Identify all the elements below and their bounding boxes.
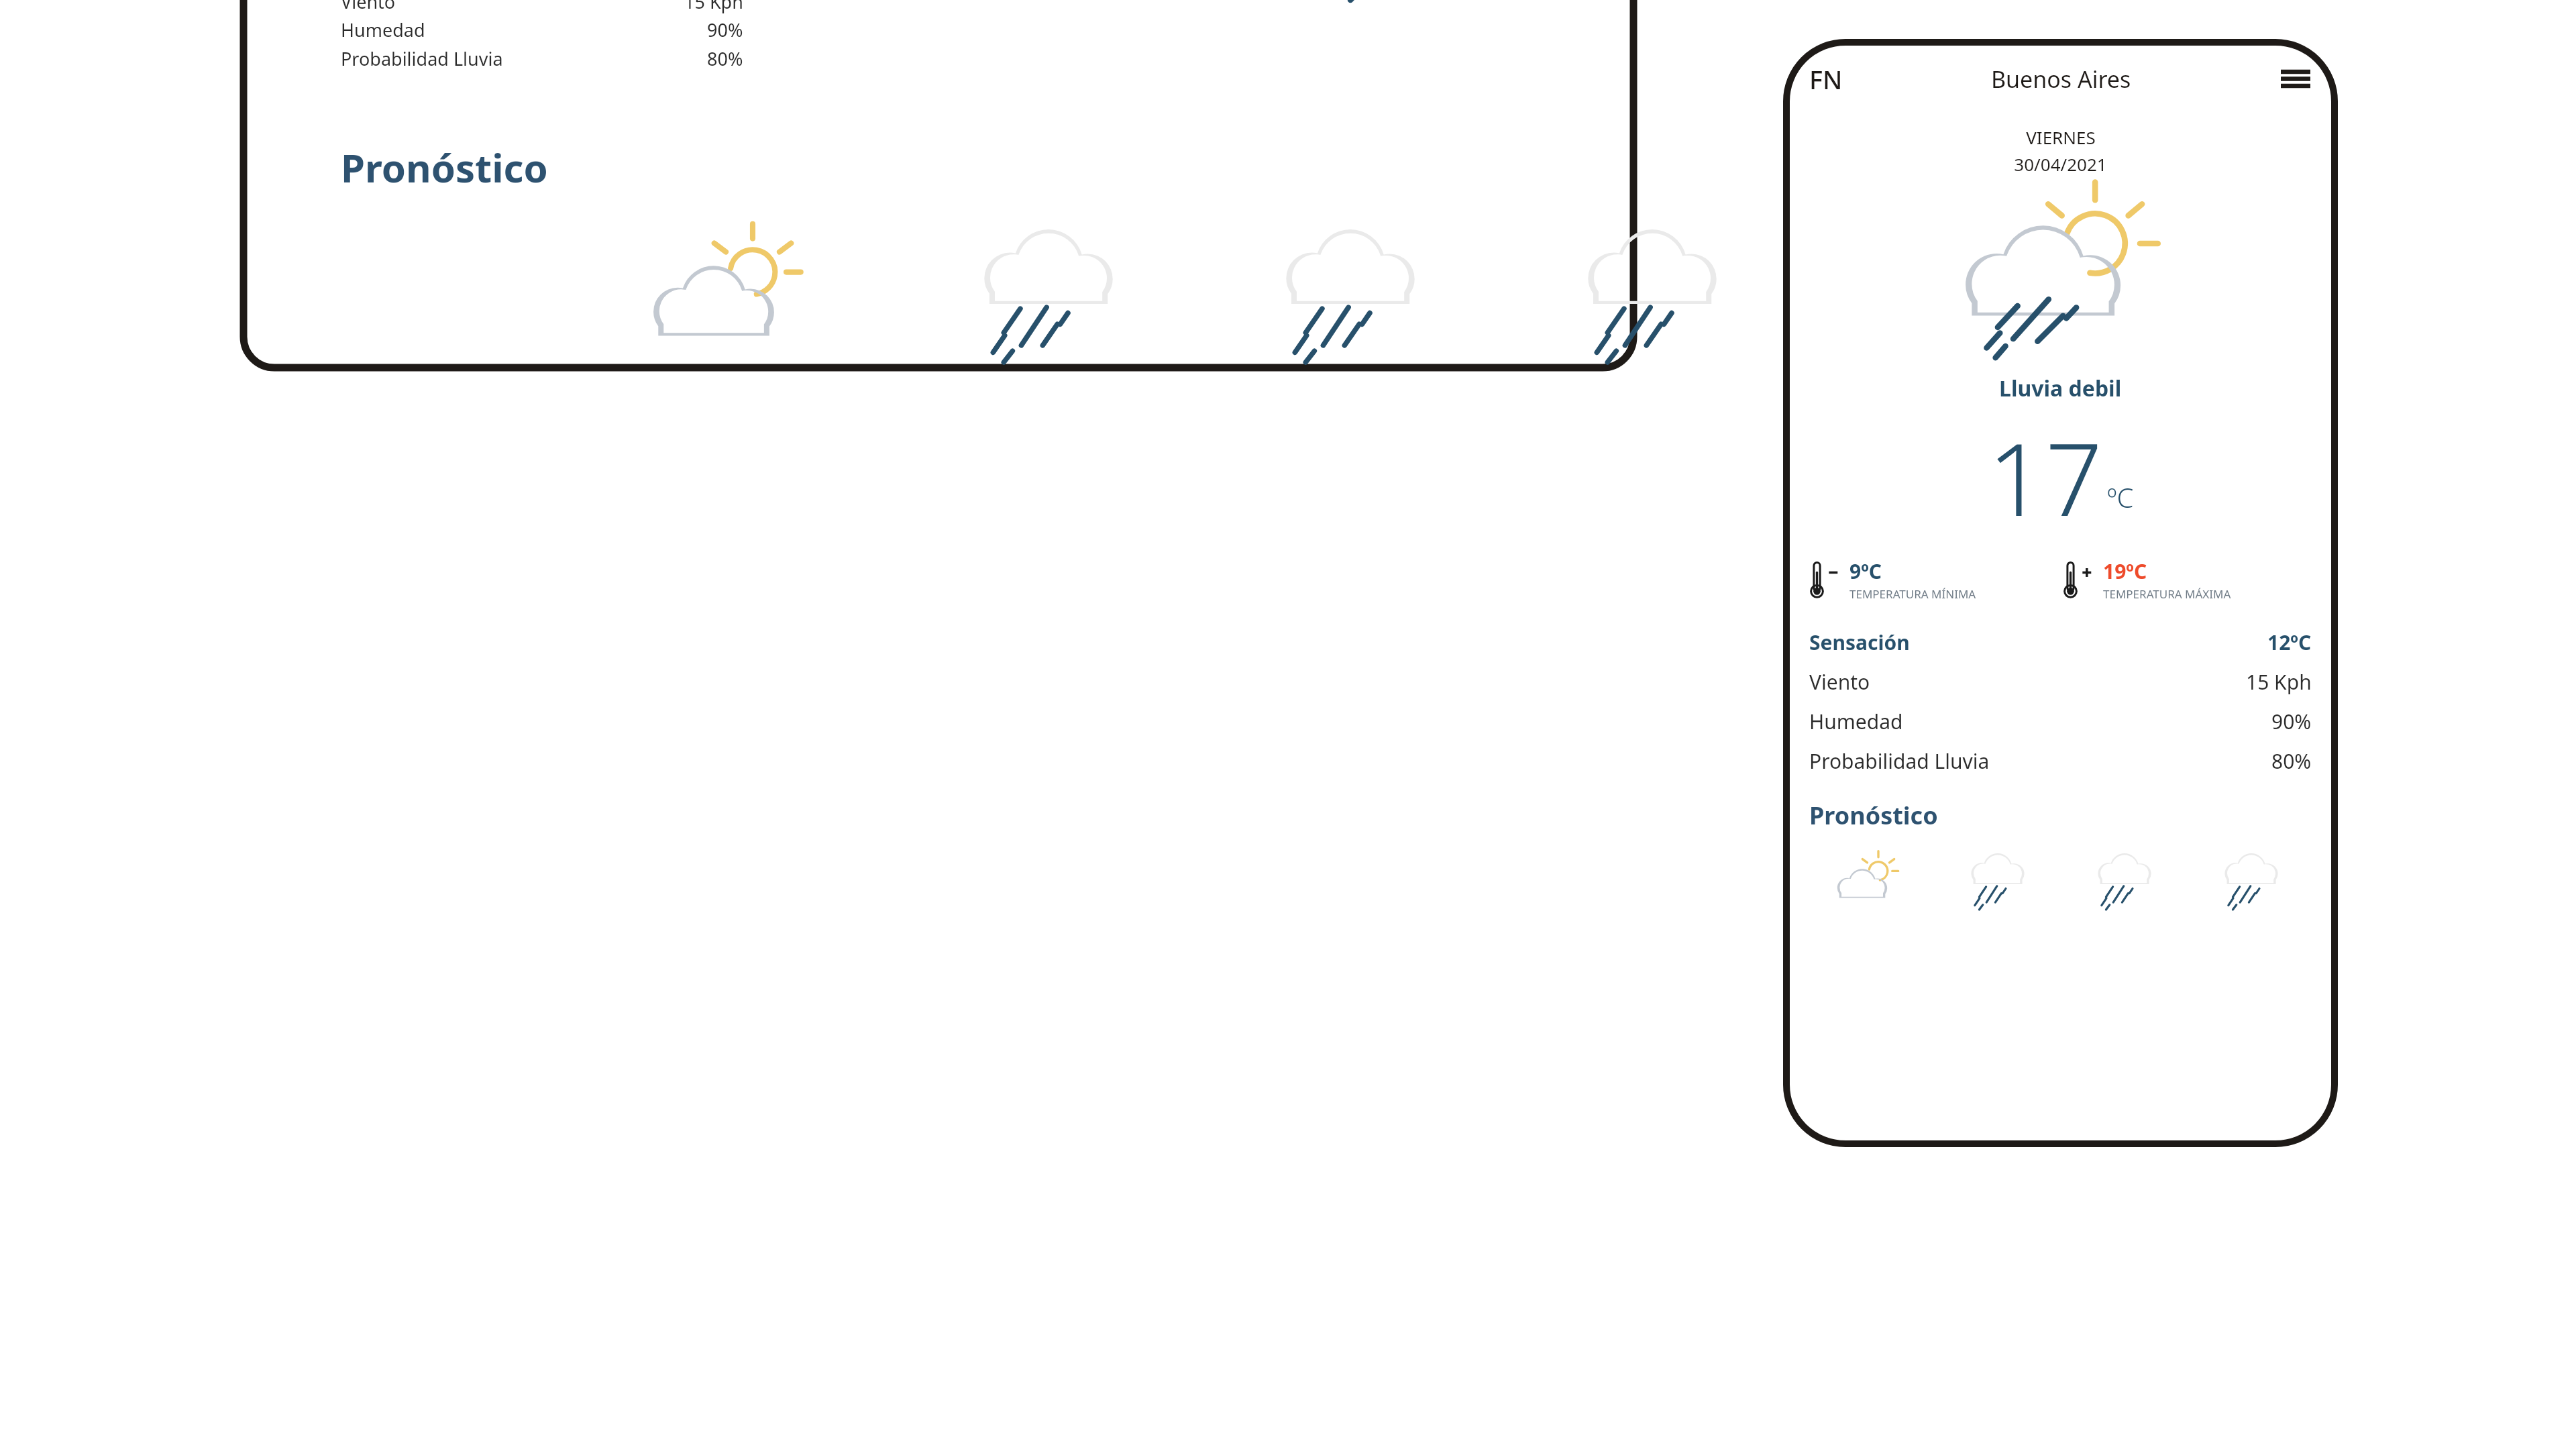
button[interactable]: Viento bbox=[341, 0, 743, 14]
staticText: 30/04/2021 bbox=[2014, 152, 2107, 176]
staticText: TEMPERATURA MÁXIMA bbox=[2103, 586, 2231, 602]
staticText: Pronóstico bbox=[1809, 799, 1938, 832]
button[interactable]: Humedad bbox=[1807, 708, 2314, 735]
staticText: Viento bbox=[341, 0, 396, 14]
staticText: 15 Kph bbox=[2246, 668, 2312, 696]
button[interactable]: Humedad bbox=[341, 17, 743, 42]
button[interactable]: Sensación bbox=[1807, 629, 2314, 656]
staticText: 80% bbox=[707, 46, 743, 71]
staticText: TEMPERATURA MÍNIMA bbox=[1849, 586, 1976, 602]
staticText: 15 Kph bbox=[684, 0, 743, 14]
button[interactable]: Pronóstico lluvia bbox=[951, 221, 1146, 362]
staticText: Pronóstico bbox=[341, 141, 548, 194]
button[interactable]: Pronóstico soleado con nubes bbox=[636, 221, 830, 362]
staticText: 19ºC bbox=[2103, 557, 2147, 585]
staticText: 17 bbox=[1988, 409, 2103, 545]
button[interactable]: Pronóstico lluvia bbox=[1253, 221, 1448, 362]
staticText: Humedad bbox=[341, 17, 425, 42]
staticText: 9ºC bbox=[1849, 557, 1882, 585]
staticText: 90% bbox=[707, 17, 743, 42]
staticText: ºC bbox=[2107, 479, 2134, 515]
staticText: Viento bbox=[1809, 668, 1870, 696]
staticText: 12ºC bbox=[2267, 629, 2312, 656]
button[interactable]: FN bbox=[1807, 59, 1845, 99]
button[interactable]: Pronóstico lluvia bbox=[1555, 221, 1750, 362]
staticText: VIERNES bbox=[2026, 125, 2096, 149]
button[interactable]: Menú bbox=[2277, 60, 2314, 98]
staticText: 80% bbox=[2271, 747, 2312, 775]
button[interactable]: Probabilidad Lluvia bbox=[341, 46, 743, 71]
staticText: Lluvia debil bbox=[1999, 374, 2122, 403]
staticText: 90% bbox=[2271, 708, 2312, 735]
staticText: FN bbox=[1809, 62, 1843, 97]
button[interactable]: Viento bbox=[1807, 668, 2314, 696]
staticText: Probabilidad Lluvia bbox=[1809, 747, 1990, 775]
button[interactable]: Probabilidad Lluvia bbox=[1807, 747, 2314, 775]
button[interactable]: 9ºC bbox=[1807, 557, 2060, 602]
button[interactable]: 19ºC bbox=[2060, 557, 2314, 602]
staticText: Sensación bbox=[1809, 629, 1910, 656]
staticText: Buenos Aires bbox=[1991, 64, 2131, 95]
staticText: Probabilidad Lluvia bbox=[341, 46, 503, 71]
staticText: Humedad bbox=[1809, 708, 1903, 735]
